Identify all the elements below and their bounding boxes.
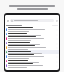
button[interactable]: More options <box>5 50 59 54</box>
button[interactable] <box>10 19 54 22</box>
button[interactable]: Menu <box>6 19 9 22</box>
button[interactable]: More options <box>5 41 59 45</box>
button[interactable]: More options <box>5 36 59 41</box>
button[interactable]: More options <box>5 32 59 36</box>
button[interactable]: More options <box>5 45 59 50</box>
button[interactable]: More options <box>5 27 59 32</box>
button[interactable]: More options <box>5 59 59 63</box>
button[interactable]: Account <box>55 19 58 22</box>
button[interactable]: More options <box>5 63 59 68</box>
button[interactable]: More options <box>5 54 59 59</box>
button[interactable] <box>5 23 59 27</box>
